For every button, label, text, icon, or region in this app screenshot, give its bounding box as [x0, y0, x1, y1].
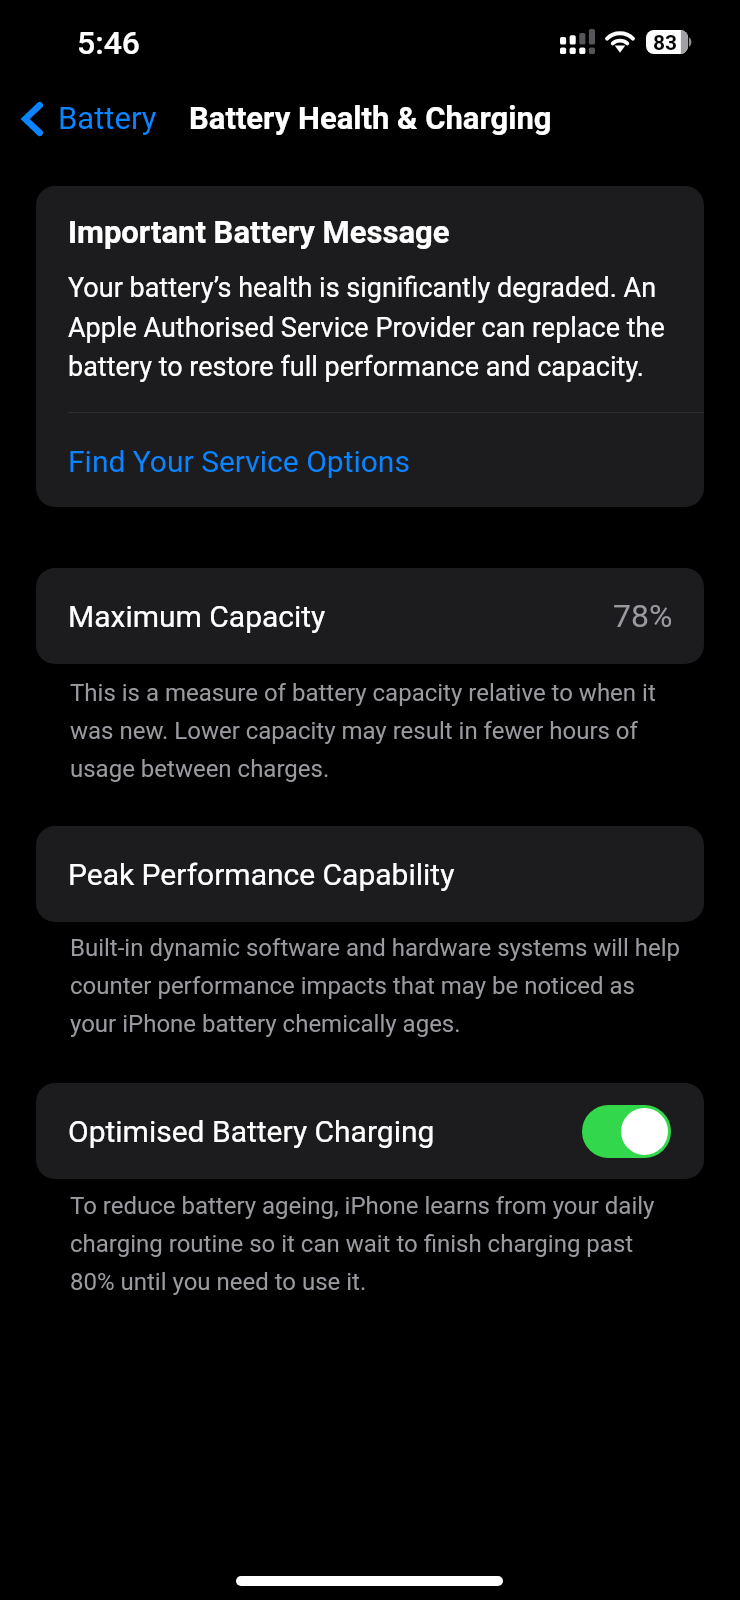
staticText: Important Battery Message [68, 214, 450, 251]
staticText: counter performance impacts that may be … [70, 972, 636, 1000]
staticText: charging routine so it can wait to finis… [70, 1230, 634, 1258]
button[interactable]: Maximum Capacity [36, 568, 704, 664]
staticText: 5:46 [77, 24, 141, 62]
staticText: This is a measure of battery capacity re… [70, 679, 656, 707]
staticText: Battery Health & Charging [189, 100, 552, 137]
button[interactable]: Find Your Service Options [36, 413, 704, 507]
staticText: Apple Authorised Service Provider can re… [68, 312, 665, 344]
staticText: Maximum Capacity [68, 599, 326, 634]
staticText: Built-in dynamic software and hardware s… [70, 934, 680, 962]
other: Wi-Fi [604, 28, 636, 54]
staticText: 83 [653, 30, 678, 54]
staticText: Optimised Battery Charging [68, 1114, 435, 1149]
button[interactable]: Optimised Battery Charging, on [582, 1105, 671, 1158]
other: Battery 83 percent [646, 30, 694, 54]
staticText: your iPhone battery chemically ages. [70, 1010, 461, 1038]
staticText: usage between charges. [70, 755, 330, 783]
staticText: Your battery’s health is significantly d… [68, 272, 657, 304]
staticText: Find Your Service Options [68, 444, 410, 479]
staticText: battery to restore full performance and … [68, 351, 644, 383]
staticText: was new. Lower capacity may result in fe… [70, 717, 638, 745]
staticText: Peak Performance Capability [68, 857, 455, 892]
other: Cellular signal [560, 29, 595, 54]
button[interactable]: Battery [14, 92, 166, 146]
staticText: To reduce battery ageing, iPhone learns … [70, 1192, 655, 1220]
staticText: Battery [58, 100, 157, 137]
staticText: 78% [613, 597, 673, 635]
staticText: 80% until you need to use it. [70, 1268, 367, 1296]
button[interactable]: Peak Performance Capability [36, 826, 704, 922]
